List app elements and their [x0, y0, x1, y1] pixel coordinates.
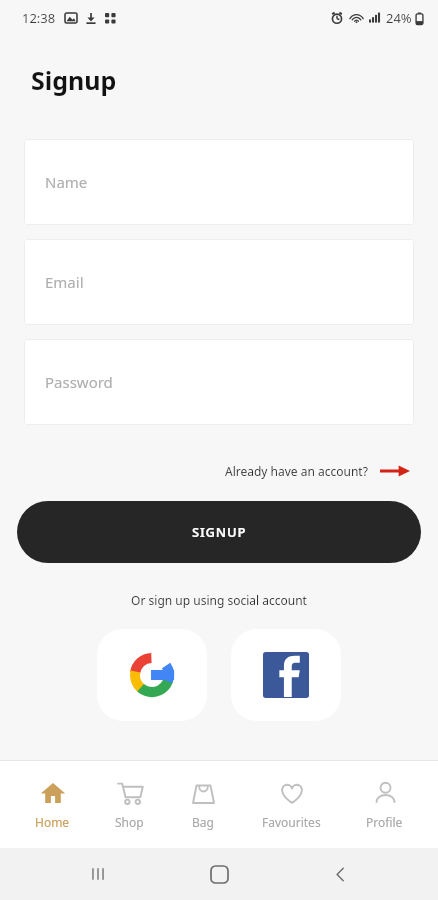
staticText: Or sign up using social account	[0, 592, 438, 608]
staticText: Name	[45, 172, 88, 192]
button[interactable]: Back	[317, 851, 363, 897]
other: Go to login	[380, 464, 410, 478]
button[interactable]: SIGNUP	[17, 501, 421, 563]
staticText: Signup	[31, 63, 117, 97]
staticText: Profile	[366, 814, 403, 830]
staticText: Already have an account?	[225, 463, 368, 479]
staticText: Password	[45, 372, 113, 392]
button[interactable]: Profile	[356, 773, 413, 836]
button[interactable]: Recent apps	[75, 851, 121, 897]
staticText: Shop	[115, 814, 144, 830]
button[interactable]: Home	[196, 851, 242, 897]
button[interactable]: Name	[24, 139, 414, 225]
button[interactable]: Already have an account?	[221, 459, 414, 483]
staticText: Home	[35, 814, 70, 830]
button[interactable]: Favourites	[252, 773, 331, 836]
button[interactable]: Sign up with Facebook	[231, 629, 341, 721]
staticText: Favourites	[262, 814, 321, 830]
button[interactable]: Email	[24, 239, 414, 325]
staticText: 24%	[386, 9, 412, 27]
button[interactable]: Home	[25, 773, 80, 836]
staticText: Bag	[192, 814, 214, 830]
staticText: 12:38	[22, 9, 56, 27]
staticText: Email	[45, 272, 84, 292]
staticText: SIGNUP	[192, 523, 247, 541]
button[interactable]: Password	[24, 339, 414, 425]
button[interactable]: Shop	[105, 773, 154, 836]
button[interactable]: Sign up with Google	[97, 629, 207, 721]
button[interactable]: Bag	[179, 773, 227, 836]
